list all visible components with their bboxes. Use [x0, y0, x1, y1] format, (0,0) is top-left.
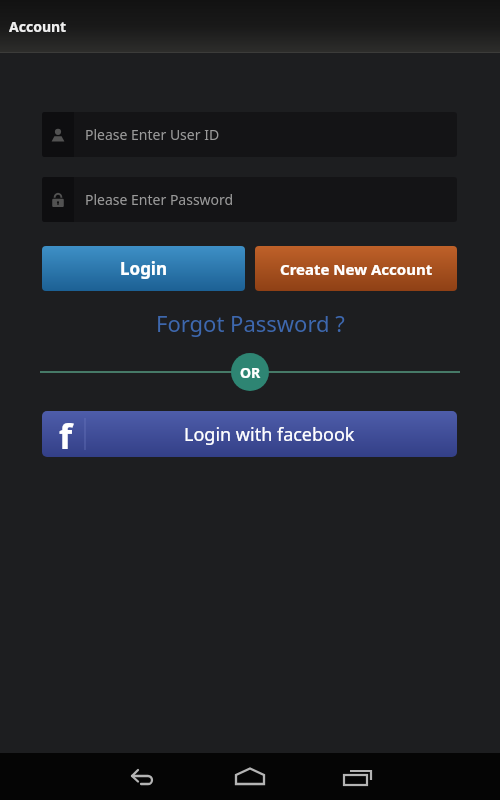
- button[interactable]: [335, 758, 375, 798]
- button[interactable]: Please Enter Password: [42, 177, 457, 222]
- button[interactable]: Account: [0, 0, 500, 53]
- button[interactable]: [230, 758, 270, 798]
- staticText: f: [59, 413, 73, 457]
- button[interactable]: Create New Account: [255, 246, 457, 291]
- button[interactable]: f: [42, 411, 457, 457]
- button[interactable]: Login: [42, 246, 245, 291]
- staticText: Please Enter Password: [85, 190, 234, 209]
- button[interactable]: [125, 758, 165, 798]
- staticText: Please Enter User ID: [85, 125, 220, 144]
- button[interactable]: Forgot Password ?: [0, 306, 500, 340]
- staticText: Login: [120, 257, 168, 280]
- button[interactable]: Please Enter User ID: [42, 112, 457, 157]
- staticText: Forgot Password ?: [156, 308, 345, 338]
- staticText: Login with facebook: [184, 422, 355, 447]
- staticText: OR: [240, 363, 261, 382]
- staticText: Account: [9, 17, 67, 36]
- staticText: Create New Account: [280, 259, 433, 279]
